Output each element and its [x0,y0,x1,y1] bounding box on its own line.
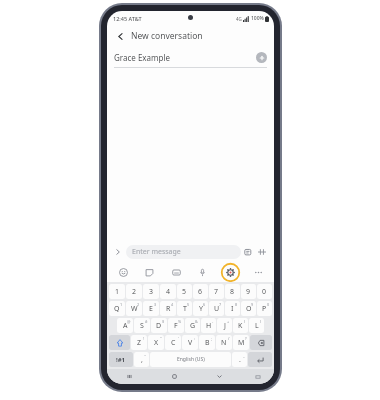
staticText: 7 [214,287,219,297]
staticText: D [156,321,162,331]
staticText: 6 [198,287,203,297]
staticText: 4G [236,16,242,22]
button[interactable]: 4 [160,284,176,299]
button[interactable]: 0 [257,301,272,316]
button[interactable]: Recents [107,369,152,384]
button[interactable]: : [182,335,198,350]
staticText: ( [244,319,246,324]
button[interactable]: Settings [221,263,240,282]
staticText: _ [243,353,245,358]
staticText: C [171,338,176,348]
staticText: 8 [235,302,238,307]
button[interactable]: % [168,318,184,333]
button[interactable]: 5 [177,301,192,316]
button[interactable]: / [216,335,232,350]
button[interactable]: 3 [143,301,159,316]
staticText: I [231,304,234,314]
staticText: , [141,355,143,365]
button[interactable]: ? [233,335,249,350]
button[interactable]: Shift [109,335,130,350]
button[interactable]: Add recipient [256,52,267,63]
button[interactable]: 4 [160,301,176,316]
staticText: # [145,319,148,324]
button[interactable]: 8 [225,284,240,299]
staticText: B [205,338,210,348]
staticText: T [183,304,187,314]
staticText: 9 [246,287,251,297]
button[interactable]: Enter message [126,245,241,259]
staticText: Q [114,304,120,314]
button[interactable]: 7 [209,301,224,316]
staticText: 2 [132,287,137,297]
staticText: H [206,321,212,331]
button[interactable]: Stickers [141,264,157,280]
staticText: 5 [182,287,187,297]
staticText: English (US) [177,356,205,363]
staticText: Enter message [132,247,181,257]
button[interactable]: # [134,318,150,333]
button[interactable]: 9 [241,284,256,299]
button[interactable]: 8 [225,301,240,316]
button[interactable]: ! [131,335,147,350]
button[interactable]: 9 [241,301,256,316]
staticText: J [224,321,226,331]
button[interactable]: More options [250,264,266,280]
staticText: N [221,338,227,348]
button[interactable]: Emoji [115,264,131,280]
button[interactable]: " [148,335,164,350]
button[interactable]: $ [151,318,167,333]
button[interactable]: _ [232,352,247,367]
button[interactable]: !#1 [109,352,133,367]
button[interactable]: 0 [257,284,272,299]
staticText: !#1 [116,356,126,364]
button[interactable]: 2 [126,301,142,316]
button[interactable]: @ [117,318,133,333]
button[interactable]: + [217,318,232,333]
staticText: Grace Example [114,52,171,63]
button[interactable]: Back [107,25,274,47]
button[interactable]: Attach [241,245,255,259]
staticText: L [255,321,259,331]
button[interactable]: Effects [255,245,269,259]
staticText: 8 [230,287,235,297]
button[interactable]: Hide keyboard [242,369,274,384]
button[interactable]: 5 [177,284,192,299]
button[interactable]: 1 [109,301,125,316]
staticText: . [239,355,241,365]
staticText: ! [143,336,145,341]
staticText: 3 [154,302,157,307]
button[interactable]: & [185,318,200,333]
button[interactable]: ; [199,335,215,350]
button[interactable]: 2 [126,284,142,299]
staticText: : [194,336,196,341]
button[interactable]: Grace Example [114,47,267,67]
button[interactable]: Expand [112,246,124,258]
button[interactable]: ' [165,335,181,350]
button[interactable]: ( [233,318,248,333]
staticText: E [149,304,153,314]
button[interactable]: Back [113,29,127,43]
staticText: & [195,319,198,324]
button[interactable]: Enter [248,352,272,367]
staticText: ) [260,319,262,324]
staticText: O [246,304,252,314]
staticText: $ [162,319,165,324]
button[interactable]: Home [152,369,197,384]
button[interactable]: 3 [143,284,159,299]
staticText: 6 [203,302,206,307]
button[interactable]: 6 [193,301,208,316]
button[interactable]: ) [249,318,264,333]
button[interactable]: Backspace [250,335,272,350]
button[interactable]: 7 [209,284,224,299]
staticText: 0 [262,287,267,297]
button[interactable]: Voice [194,264,210,280]
button[interactable]: ~ [134,352,149,367]
button[interactable]: 1 [109,284,125,299]
staticText: 4 [171,302,174,307]
button[interactable]: 6 [193,284,208,299]
button[interactable]: GIF [168,264,184,280]
staticText: Y [199,304,203,314]
button[interactable]: English (US) [150,352,231,367]
button[interactable]: - [201,318,216,333]
button[interactable]: Back [197,369,242,384]
